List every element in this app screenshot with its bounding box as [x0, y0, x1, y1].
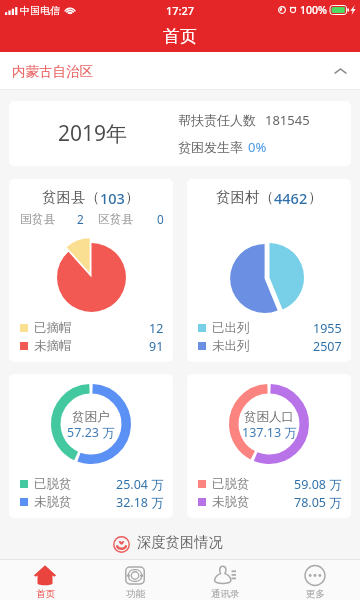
staticText: 更多	[306, 588, 325, 600]
staticText: 已脱贫	[212, 476, 250, 492]
staticText: 1955	[313, 320, 342, 337]
staticText: ）	[308, 188, 323, 206]
staticText: 32.18 万	[116, 494, 164, 511]
staticText: 137.13 万	[242, 424, 297, 441]
staticText: 首页	[36, 588, 55, 600]
staticText: 未摘帽	[34, 338, 72, 354]
button[interactable]: 功能	[90, 560, 180, 600]
button[interactable]: 深度贫困情况	[0, 529, 360, 555]
staticText: 内蒙古自治区	[12, 63, 93, 80]
staticText: 首页	[163, 26, 197, 47]
button[interactable]: 更多	[270, 560, 360, 600]
staticText: 12	[149, 320, 164, 337]
staticText: 59.08 万	[294, 476, 342, 493]
staticText: 区贫县	[98, 212, 134, 227]
staticText: 通讯录	[211, 588, 240, 600]
staticText: 2019年	[58, 119, 128, 148]
staticText: 贫困县（	[42, 188, 100, 206]
staticText: 91	[149, 338, 164, 355]
button[interactable]: 贫困村（	[187, 179, 351, 362]
staticText: 78.05 万	[294, 494, 342, 511]
staticText: 0%	[248, 138, 267, 156]
staticText: 181545	[265, 111, 310, 129]
staticText: 4462	[274, 188, 308, 208]
staticText: 17:27	[166, 3, 195, 18]
staticText: 未出列	[212, 338, 250, 354]
other: Collapse	[334, 65, 347, 78]
staticText: 未脱贫	[212, 494, 250, 510]
staticText: 已出列	[212, 320, 250, 336]
staticText: 深度贫困情况	[137, 533, 223, 551]
staticText: 未脱贫	[34, 494, 72, 510]
staticText: 25.04 万	[116, 476, 164, 493]
staticText: 帮扶责任人数	[178, 112, 256, 128]
staticText: 已摘帽	[34, 320, 72, 336]
staticText: 贫困户	[72, 409, 110, 425]
staticText: 贫困村（	[216, 188, 274, 206]
staticText: 57.23 万	[67, 424, 115, 441]
staticText: 贫困发生率	[178, 139, 243, 155]
button[interactable]: 贫困人口	[187, 374, 351, 518]
button[interactable]: 贫困县（	[9, 179, 173, 362]
staticText: 0	[157, 211, 164, 227]
button[interactable]: 首页	[0, 560, 90, 600]
staticText: 已脱贫	[34, 476, 72, 492]
staticText: 2	[77, 211, 84, 227]
button[interactable]: 2019年	[9, 101, 351, 166]
staticText: 国贫县	[20, 212, 56, 227]
button[interactable]: 通讯录	[180, 560, 270, 600]
staticText: 中国电信	[20, 4, 60, 17]
button[interactable]: 内蒙古自治区	[0, 52, 360, 90]
staticText: ）	[125, 188, 140, 206]
staticText: 103	[100, 188, 125, 208]
staticText: 100%	[300, 3, 327, 17]
staticText: 2507	[313, 338, 342, 355]
staticText: 贫困人口	[244, 409, 294, 425]
button[interactable]: 贫困户	[9, 374, 173, 518]
staticText: 功能	[126, 588, 145, 600]
